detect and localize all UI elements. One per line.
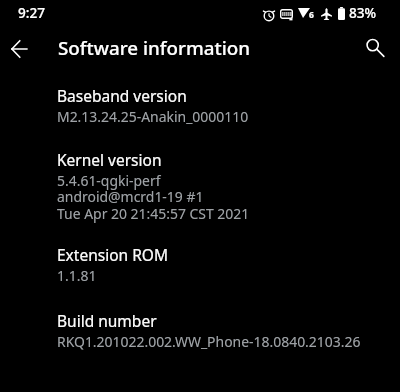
staticText: 9:27: [18, 3, 46, 22]
staticText: Baseband version: [57, 85, 187, 106]
staticText: Build number: [57, 310, 157, 331]
staticText: 5.4.61-qgki-perf android@mcrd1-19 #1 Tue…: [57, 171, 250, 223]
button[interactable]: Back: [0, 29, 39, 69]
staticText: Software information: [58, 35, 251, 61]
button[interactable]: Search: [355, 28, 395, 68]
staticText: Kernel version: [57, 149, 162, 170]
button[interactable]: Baseband version: [0, 68, 400, 132]
button[interactable]: Kernel version: [0, 132, 400, 227]
staticText: M2.13.24.25-Anakin_0000110: [57, 107, 249, 126]
button[interactable]: Build number: [0, 290, 400, 350]
staticText: 6: [309, 9, 314, 20]
staticText: 83%: [349, 3, 377, 22]
staticText: 1.1.81: [57, 266, 97, 285]
staticText: Extension ROM: [57, 244, 168, 265]
staticText: RKQ1.201022.002.WW_Phone-18.0840.2103.26: [57, 332, 361, 350]
button[interactable]: Extension ROM: [0, 227, 400, 290]
